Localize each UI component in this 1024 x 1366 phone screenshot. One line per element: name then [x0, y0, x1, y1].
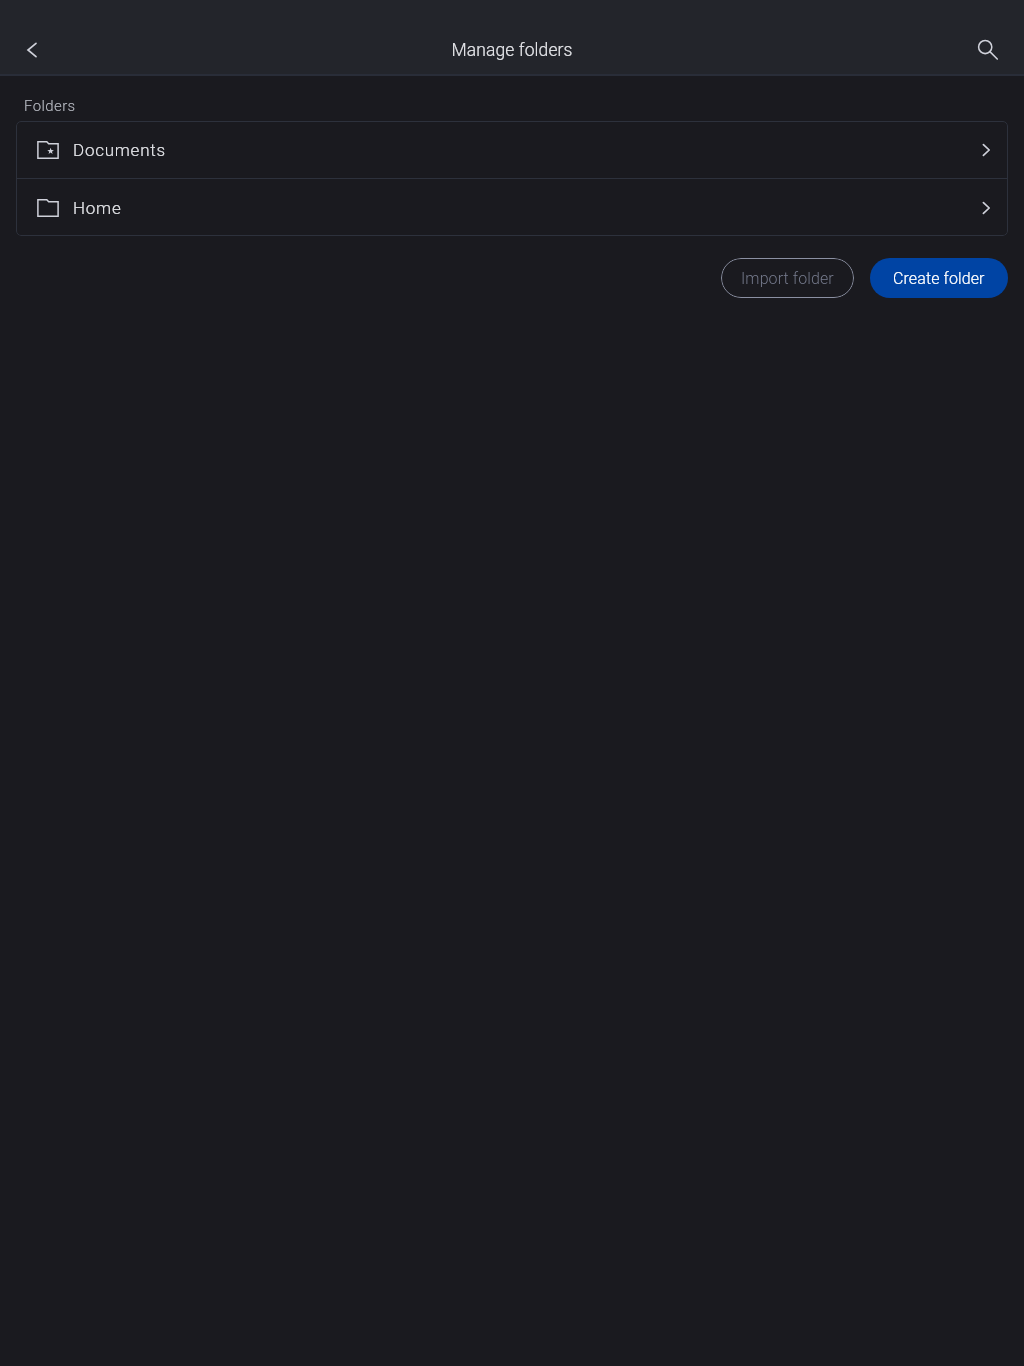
button[interactable]: Import folder	[721, 258, 854, 298]
staticText: Documents	[73, 140, 166, 160]
staticText: Create folder	[893, 269, 985, 288]
button[interactable]: Create folder	[870, 258, 1008, 298]
staticText: Import folder	[741, 269, 834, 288]
button[interactable]: Search	[964, 26, 1012, 74]
button[interactable]: Back	[8, 26, 56, 74]
button[interactable]: Home	[16, 179, 1008, 236]
staticText: Manage folders	[451, 40, 573, 61]
staticText: Folders	[24, 97, 76, 115]
button[interactable]: Documents	[16, 121, 1008, 178]
staticText: Home	[73, 198, 122, 218]
